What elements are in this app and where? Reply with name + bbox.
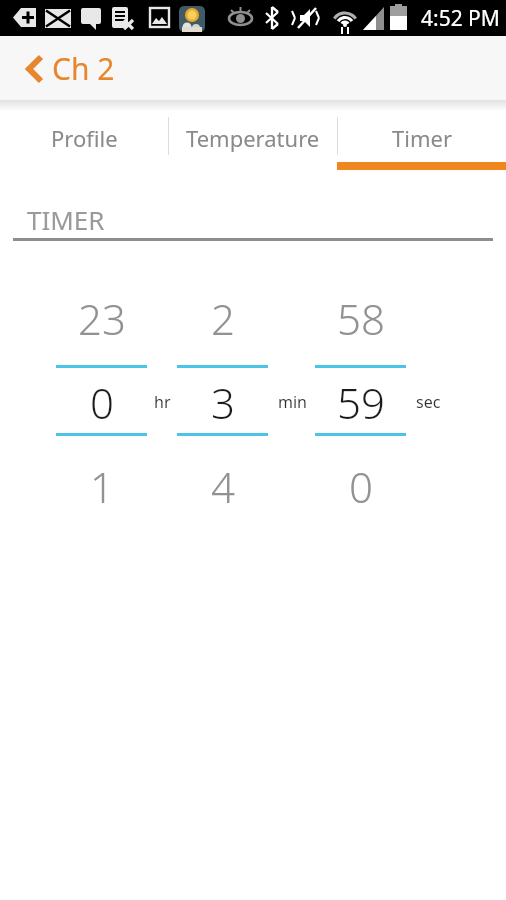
button[interactable]: 2 (177, 276, 268, 528)
staticText: 0 (90, 374, 114, 431)
staticText: TIMER (27, 202, 105, 237)
button[interactable]: Timer (337, 110, 506, 174)
staticText: hr (154, 391, 171, 413)
button[interactable]: 58 (315, 276, 406, 528)
staticText: Timer (392, 123, 452, 153)
staticText: 4 (211, 458, 235, 515)
button[interactable]: Ch 2 (26, 48, 115, 89)
button[interactable]: Profile (0, 110, 168, 174)
button[interactable]: 23 (56, 276, 147, 528)
staticText: 1 (90, 458, 114, 515)
staticText: 0 (349, 458, 373, 515)
staticText: Temperature (186, 123, 320, 153)
staticText: 23 (78, 290, 126, 347)
staticText: 59 (337, 374, 385, 431)
staticText: 3 (211, 374, 235, 431)
button[interactable]: Temperature (168, 110, 337, 174)
staticText: sec (416, 391, 441, 413)
staticText: 58 (337, 290, 385, 347)
staticText: Profile (51, 123, 118, 153)
staticText: 4:52 PM (421, 4, 500, 33)
staticText: 2 (211, 290, 235, 347)
staticText: Ch 2 (52, 48, 115, 89)
staticText: min (278, 391, 307, 413)
